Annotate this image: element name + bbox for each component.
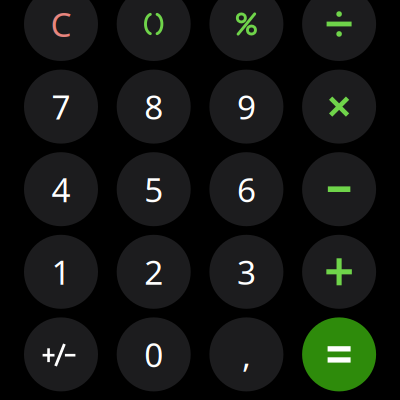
button[interactable]: Percent xyxy=(209,0,283,61)
staticText: 7 xyxy=(51,84,70,129)
staticText: 0 xyxy=(144,332,163,377)
button[interactable]: Multiply xyxy=(302,70,376,144)
button[interactable]: Divide xyxy=(302,0,376,61)
button[interactable]: Equals xyxy=(302,317,376,391)
button[interactable]: 3 xyxy=(209,235,283,309)
button[interactable]: 9 xyxy=(209,70,283,144)
button[interactable]: 0 xyxy=(117,317,191,391)
staticText: 2 xyxy=(144,250,163,294)
button[interactable]: Subtract xyxy=(302,152,376,226)
button[interactable]: 4 xyxy=(24,152,98,226)
button[interactable]: Plus minus xyxy=(24,317,98,391)
staticText: 9 xyxy=(237,84,256,129)
staticText: 5 xyxy=(144,167,163,211)
button[interactable]: 5 xyxy=(117,152,191,226)
staticText: 4 xyxy=(51,167,70,211)
staticText: C xyxy=(50,2,71,46)
button[interactable]: Decimal separator xyxy=(209,317,283,391)
button[interactable]: 6 xyxy=(209,152,283,226)
button[interactable]: Parentheses xyxy=(117,0,191,61)
staticText: 1 xyxy=(51,250,70,294)
button[interactable]: 2 xyxy=(117,235,191,309)
staticText: , xyxy=(242,333,251,377)
button[interactable]: Add xyxy=(302,235,376,309)
button[interactable]: 8 xyxy=(117,70,191,144)
staticText: 3 xyxy=(237,250,256,294)
button[interactable]: Clear xyxy=(24,0,98,61)
button[interactable]: 7 xyxy=(24,70,98,144)
button[interactable]: 1 xyxy=(24,235,98,309)
staticText: 6 xyxy=(237,167,256,211)
staticText: 8 xyxy=(144,84,163,129)
